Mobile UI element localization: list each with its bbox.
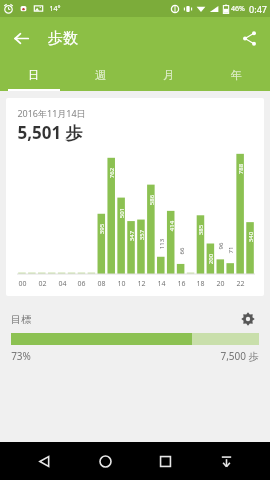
staticText: 762: [107, 167, 115, 178]
staticText: 歩数: [48, 29, 78, 48]
staticText: 00: [18, 279, 27, 289]
staticText: 12: [137, 279, 146, 289]
staticText: 04: [58, 279, 67, 289]
staticText: 06: [77, 279, 86, 289]
staticText: 66: [177, 247, 185, 254]
staticText: 200: [206, 253, 214, 264]
button[interactable]: Share: [233, 22, 265, 54]
staticText: 週: [95, 68, 106, 82]
staticText: 14°: [49, 4, 61, 14]
staticText: 16: [177, 279, 186, 289]
staticText: 347: [127, 230, 135, 241]
staticText: 年: [231, 68, 242, 82]
button[interactable]: 年: [202, 59, 270, 91]
staticText: 0:47: [249, 3, 267, 15]
staticText: 20: [216, 279, 225, 289]
staticText: 96: [216, 242, 224, 249]
button[interactable]: 2016年11月14日: [6, 98, 264, 296]
staticText: 586: [147, 194, 155, 205]
button[interactable]: Back: [27, 444, 61, 478]
staticText: 日: [28, 68, 39, 82]
button[interactable]: Hide keyboard: [209, 444, 243, 478]
button[interactable]: Back: [5, 22, 37, 54]
staticText: 22: [236, 279, 245, 289]
staticText: 10: [117, 279, 126, 289]
staticText: 788: [236, 163, 244, 174]
staticText: 02: [38, 279, 47, 289]
staticText: 414: [167, 220, 175, 231]
staticText: 357: [137, 229, 145, 240]
button[interactable]: 週: [67, 59, 134, 91]
staticText: 14: [157, 279, 166, 289]
staticText: 73%: [11, 349, 31, 363]
staticText: 目標: [11, 313, 31, 326]
staticText: 月: [163, 68, 174, 82]
staticText: 18: [196, 279, 205, 289]
staticText: 385: [196, 224, 204, 235]
button[interactable]: 日: [0, 59, 67, 91]
staticText: 340: [246, 231, 254, 242]
staticText: 71: [226, 246, 234, 253]
button[interactable]: Recents: [148, 444, 182, 478]
button[interactable]: 月: [134, 59, 202, 91]
staticText: 5,501 歩: [17, 121, 83, 144]
staticText: 113: [157, 238, 165, 249]
staticText: 08: [97, 279, 106, 289]
staticText: 501: [117, 207, 125, 218]
staticText: 7,500 歩: [220, 349, 259, 363]
staticText: 2016年11月14日: [17, 107, 86, 119]
staticText: 395: [97, 223, 105, 234]
button[interactable]: Home: [88, 444, 122, 478]
staticText: 46%: [231, 4, 245, 14]
button[interactable]: Settings: [237, 308, 259, 330]
